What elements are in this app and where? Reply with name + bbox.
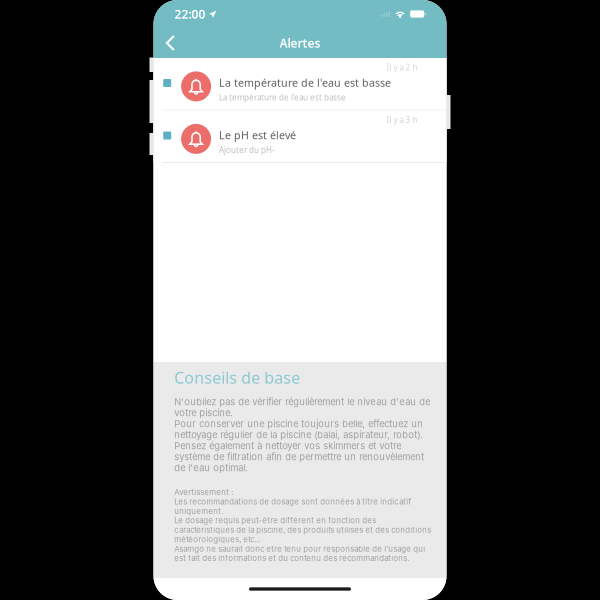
staticText: Ajouter du pH- [219,145,275,155]
staticText: La température de l'eau est basse [219,92,346,103]
staticText: Il y a 3 h [386,114,417,125]
staticText: Avertissement : Les recommandations de d… [174,487,431,563]
button[interactable]: Back [158,28,182,58]
staticText: Le pH est élevé [219,128,296,142]
staticText: 22:00 [174,6,205,22]
staticText: Il y a 2 h [386,62,417,73]
button[interactable]: Il y a 2 h [153,58,446,110]
staticText: La température de l'eau est basse [219,75,391,90]
staticText: Conseils de base [174,367,300,388]
staticText: N'oubliez pas de vérifier régulièrement … [174,396,430,473]
staticText: Alertes [279,35,320,51]
button[interactable]: Il y a 3 h [153,110,446,162]
